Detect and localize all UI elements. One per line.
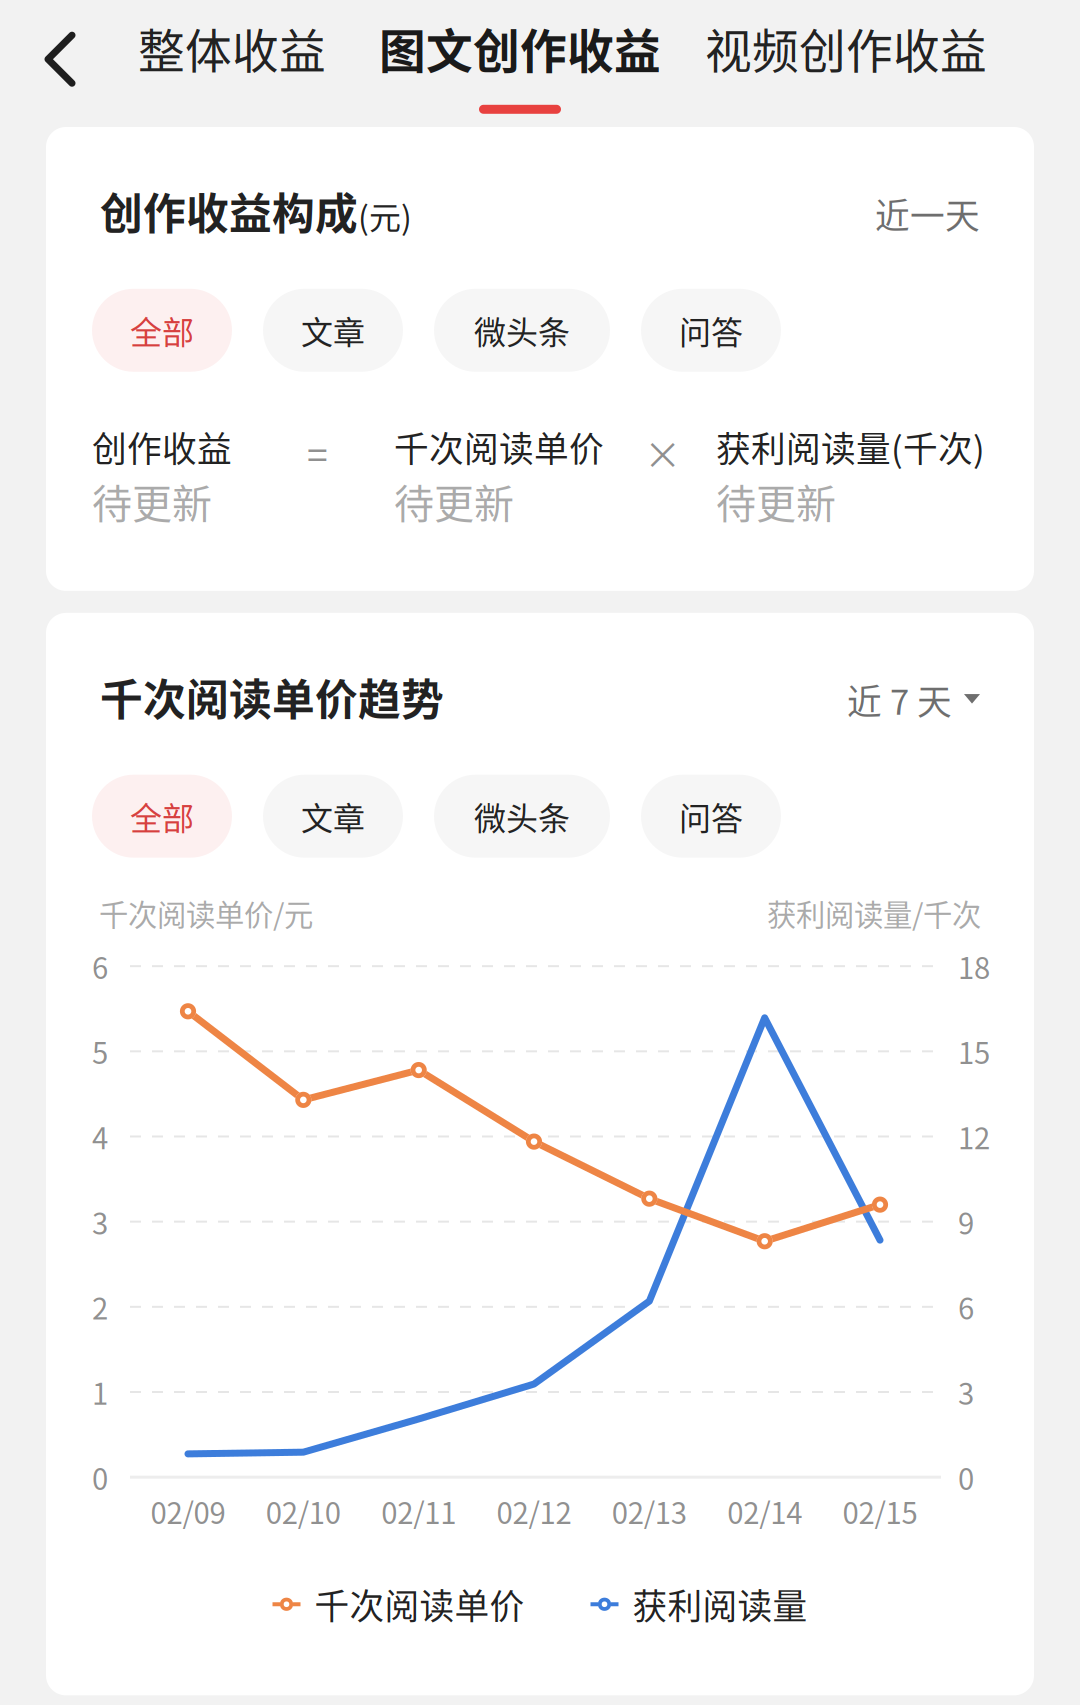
button[interactable]: 近一天 [875, 189, 980, 242]
staticText: 0 [958, 1456, 974, 1498]
staticText: 02/12 [496, 1490, 571, 1532]
button[interactable]: 整体收益 [90, 0, 352, 128]
staticText: 文章 [301, 307, 365, 353]
button[interactable]: 问答 [641, 289, 781, 372]
staticText: 千次阅读单价趋势 [100, 666, 444, 728]
staticText: 创作收益 [92, 422, 232, 472]
button[interactable]: 问答 [641, 775, 781, 858]
staticText: 获利阅读量 [632, 1579, 807, 1629]
staticText: 02/14 [727, 1490, 802, 1532]
staticText: 02/11 [381, 1490, 456, 1532]
button[interactable]: 近 7 天 [847, 674, 980, 728]
staticText: × [644, 426, 681, 480]
staticText: 视频创作收益 [705, 14, 987, 82]
staticText: 待更新 [92, 472, 212, 530]
staticText: 近 7 天 [847, 674, 952, 725]
staticText: 近一天 [875, 189, 980, 239]
staticText: 9 [958, 1200, 974, 1243]
staticText: 4 [92, 1115, 108, 1158]
staticText: 整体收益 [138, 14, 326, 82]
staticText: 5 [92, 1030, 108, 1073]
staticText: 文章 [301, 793, 365, 839]
button[interactable]: 视频创作收益 [683, 0, 1017, 128]
staticText: 图文创作收益 [379, 14, 661, 82]
staticText: 0 [92, 1456, 108, 1498]
button[interactable]: 文章 [263, 289, 403, 372]
staticText: 千次阅读单价 [394, 422, 604, 472]
staticText: 6 [92, 945, 108, 987]
staticText: 02/15 [842, 1490, 917, 1532]
button[interactable]: 全部 [92, 289, 232, 372]
staticText: 获利阅读量(千次) [716, 422, 985, 472]
staticText: 获利阅读量/千次 [767, 892, 981, 934]
staticText: 待更新 [716, 472, 836, 530]
staticText: 3 [958, 1371, 974, 1413]
button[interactable]: 全部 [92, 775, 232, 858]
button[interactable]: 图文创作收益 [352, 0, 683, 114]
button[interactable]: 微头条 [434, 289, 610, 372]
staticText: 1 [92, 1371, 108, 1413]
staticText: 全部 [130, 793, 194, 839]
button[interactable]: 微头条 [434, 775, 610, 858]
staticText: 2 [92, 1286, 108, 1328]
staticText: 12 [958, 1115, 990, 1158]
staticText: 问答 [679, 307, 743, 353]
staticText: 15 [958, 1030, 990, 1073]
staticText: (元) [358, 192, 412, 239]
staticText: 问答 [679, 793, 743, 839]
staticText: 微头条 [474, 307, 570, 353]
staticText: 千次阅读单价 [314, 1579, 524, 1629]
staticText: 千次阅读单价/元 [99, 892, 313, 934]
button[interactable]: 文章 [263, 775, 403, 858]
staticText: 02/10 [266, 1490, 341, 1532]
staticText: 6 [958, 1286, 974, 1328]
staticText: 创作收益构成 [100, 180, 358, 242]
staticText: 3 [92, 1200, 108, 1243]
staticText: 18 [958, 945, 990, 987]
staticText: 全部 [130, 307, 194, 353]
staticText: 微头条 [474, 793, 570, 839]
staticText: 02/09 [150, 1490, 225, 1532]
staticText: 02/13 [612, 1490, 687, 1532]
staticText: 待更新 [394, 472, 514, 530]
staticText: = [307, 426, 328, 480]
button[interactable]: 返回 [0, 0, 90, 108]
